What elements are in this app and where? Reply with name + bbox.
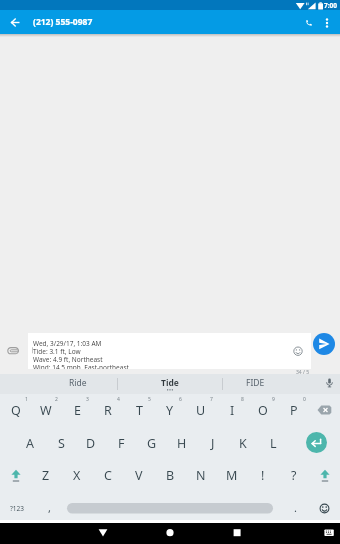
staticText: Y	[166, 402, 174, 419]
staticText: !	[261, 467, 265, 484]
staticText: ?	[291, 467, 297, 484]
staticText: Wed, 3/29/17, 1:03 AM Tide: 3.1 ft, Low …	[33, 339, 129, 369]
staticText: 6	[179, 396, 182, 403]
staticText: ,	[48, 500, 51, 514]
staticText: .	[294, 500, 297, 514]
staticText: 4	[117, 396, 120, 403]
staticText: N	[196, 467, 206, 484]
staticText: 8	[241, 396, 244, 403]
staticText: Tide	[161, 377, 179, 389]
staticText: R	[104, 402, 112, 419]
staticText: S	[58, 435, 65, 452]
staticText: P	[290, 402, 298, 419]
staticText: A	[26, 435, 34, 452]
staticText: K	[239, 435, 247, 452]
staticText: L	[270, 435, 277, 452]
staticText: 9	[272, 396, 275, 403]
staticText: Q	[11, 402, 21, 419]
staticText: Z	[42, 467, 50, 484]
staticText: 0	[303, 396, 306, 403]
staticText: B	[166, 467, 175, 484]
staticText: I	[230, 402, 235, 419]
staticText: Ride	[69, 377, 87, 389]
staticText: V	[135, 467, 143, 484]
staticText: C	[104, 467, 112, 484]
staticText: J	[211, 435, 215, 452]
staticText: W	[40, 402, 52, 419]
staticText: 1	[25, 396, 28, 403]
staticText: D	[86, 435, 96, 452]
staticText: 7:00	[324, 1, 337, 10]
staticText: 7	[210, 396, 213, 403]
staticText: H	[177, 435, 187, 452]
staticText: (212) 555-0987	[33, 16, 93, 28]
staticText: 2	[55, 396, 58, 403]
staticText: ?123	[10, 504, 24, 513]
staticText: X	[73, 467, 81, 484]
staticText: 3	[86, 396, 89, 403]
staticText: FIDE	[246, 377, 265, 389]
staticText: G	[147, 435, 157, 452]
staticText: U	[196, 402, 206, 419]
staticText: E	[74, 402, 81, 419]
staticText: M	[226, 467, 238, 484]
staticText: T	[136, 402, 143, 419]
staticText: F	[118, 435, 125, 452]
staticText: 34 / 5	[296, 369, 310, 376]
staticText: 5	[148, 396, 151, 403]
staticText: O	[258, 402, 268, 419]
